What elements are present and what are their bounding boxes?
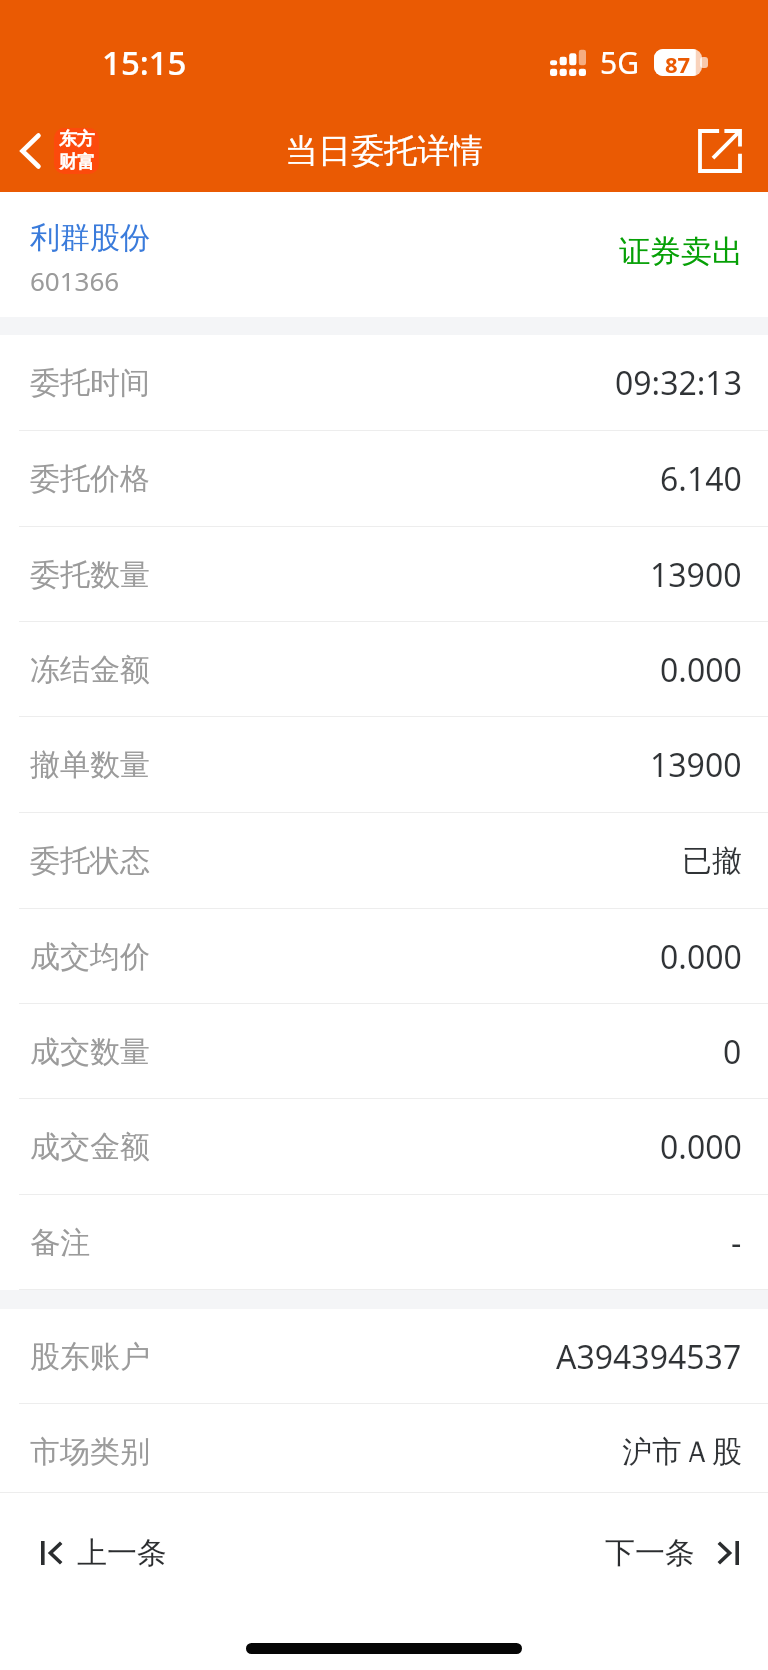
staticText: 成交金额 [30, 1128, 150, 1166]
button[interactable]: 成交金额 [0, 1099, 768, 1195]
button[interactable]: 委托价格 [0, 431, 768, 527]
staticText: 5G [600, 42, 639, 83]
staticText: 成交数量 [30, 1033, 150, 1071]
staticText: 已撤 [682, 842, 742, 880]
staticText: 撤单数量 [30, 746, 150, 784]
staticText: 利群股份 [30, 219, 150, 257]
button[interactable]: 成交数量 [0, 1004, 768, 1099]
button[interactable]: 市场类别 [0, 1404, 768, 1493]
staticText: 证券卖出 [619, 232, 743, 271]
staticText: 0.000 [660, 935, 742, 979]
staticText: 备注 [30, 1224, 90, 1262]
staticText: 87 [665, 49, 691, 76]
staticText: 委托价格 [30, 460, 150, 498]
button[interactable]: 成交均价 [0, 909, 768, 1004]
button[interactable]: 上一条 [0, 1493, 187, 1605]
staticText: 上一条 [77, 1534, 167, 1572]
staticText: - [731, 1221, 742, 1265]
button[interactable]: 委托时间 [0, 335, 768, 431]
staticText: 委托时间 [30, 364, 150, 402]
staticText: 0.000 [660, 648, 742, 692]
button[interactable]: Share [672, 110, 768, 192]
button[interactable]: 委托状态 [0, 813, 768, 909]
staticText: 股东账户 [30, 1338, 150, 1376]
button[interactable]: 撤单数量 [0, 717, 768, 813]
staticText: 0 [723, 1030, 742, 1074]
staticText: 委托状态 [30, 842, 150, 880]
button[interactable]: 冻结金额 [0, 622, 768, 717]
staticText: 成交均价 [30, 938, 150, 976]
button[interactable]: 下一条 [585, 1493, 768, 1605]
staticText: A394394537 [556, 1335, 742, 1379]
button[interactable]: 利群股份 [0, 192, 768, 317]
staticText: 6.140 [660, 457, 742, 501]
staticText: 委托数量 [30, 556, 150, 594]
staticText: 东方 [59, 128, 95, 151]
staticText: 601366 [30, 263, 120, 298]
staticText: 0.000 [660, 1125, 742, 1169]
staticText: 下一条 [605, 1534, 695, 1572]
staticText: 沪市Ａ股 [622, 1433, 742, 1471]
staticText: 09:32:13 [615, 361, 742, 405]
button[interactable]: 委托数量 [0, 527, 768, 622]
staticText: 13900 [650, 553, 742, 597]
staticText: 15:15 [102, 40, 187, 85]
staticText: 财富 [59, 151, 95, 174]
staticText: 当日委托详情 [285, 130, 483, 172]
staticText: 市场类别 [30, 1433, 150, 1471]
staticText: 冻结金额 [30, 651, 150, 689]
staticText: 13900 [650, 743, 742, 787]
button[interactable]: 备注 [0, 1195, 768, 1290]
button[interactable]: 股东账户 [0, 1309, 768, 1404]
button[interactable]: Back [0, 110, 115, 192]
